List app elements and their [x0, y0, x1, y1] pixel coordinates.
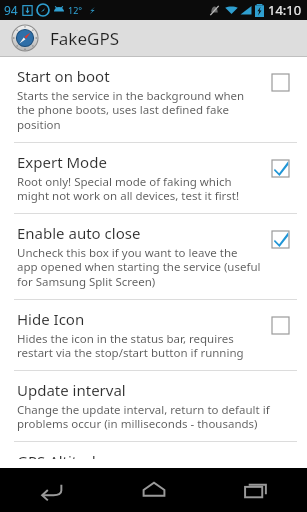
button[interactable]: Checked	[269, 228, 291, 250]
staticText: Starts the service in the background whe…	[17, 88, 261, 133]
staticText: Root only! Special mode of faking which …	[17, 174, 261, 204]
staticText: Enable auto close	[17, 223, 141, 243]
button[interactable]: Hide Icon	[0, 300, 307, 370]
button[interactable]: Checked	[269, 157, 291, 179]
staticText: FakeGPS	[50, 27, 120, 50]
button[interactable]: GPS Altitude	[0, 442, 307, 468]
staticText: 12°	[68, 4, 83, 16]
staticText: 94	[4, 2, 18, 18]
staticText: Change the update interval, return to de…	[17, 402, 297, 432]
staticText: GPS Altitude	[17, 451, 105, 459]
staticText: Update interval	[17, 380, 126, 400]
button[interactable]: Enable auto close	[0, 214, 307, 299]
button[interactable]: Expert Mode	[0, 143, 307, 213]
button[interactable]: Home	[103, 468, 205, 512]
button[interactable]: Start on boot	[0, 57, 307, 142]
staticText: Start on boot	[17, 66, 110, 86]
button[interactable]: Unchecked	[269, 71, 291, 93]
staticText: 14:10	[268, 1, 302, 19]
button[interactable]: Unchecked	[269, 314, 291, 336]
staticText: Uncheck this box if you want to leave th…	[17, 245, 261, 290]
button[interactable]: Update interval	[0, 371, 307, 441]
staticText: Hide Icon	[17, 309, 85, 329]
button[interactable]: Back	[0, 468, 103, 512]
staticText: Expert Mode	[17, 152, 107, 172]
button[interactable]: Recent apps	[205, 468, 307, 512]
staticText: Hides the icon in the status bar, requir…	[17, 331, 261, 361]
